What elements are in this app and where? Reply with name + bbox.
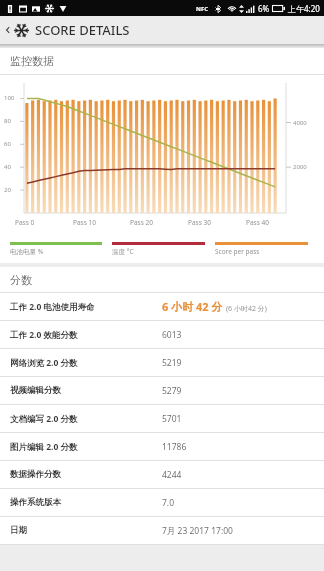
staticText: 60	[4, 140, 11, 148]
staticText: Pass 10	[73, 218, 96, 227]
staticText: Pass 40	[246, 218, 269, 227]
staticText: 分数	[10, 273, 32, 287]
staticText: 视频编辑分数	[10, 385, 61, 396]
staticText: 6013	[162, 329, 182, 341]
staticText: 工作 2.0 电池使用寿命	[10, 301, 95, 313]
staticText: Pass 30	[188, 218, 211, 227]
button[interactable]: 工作 2.0 效能分数	[0, 321, 324, 349]
staticText: SCORE DETAILS	[35, 21, 130, 39]
staticText: 11786	[162, 441, 187, 453]
button[interactable]: 视频编辑分数	[0, 377, 324, 405]
staticText: 4244	[162, 469, 182, 481]
staticText: (6 小时42 分)	[226, 304, 267, 314]
staticText: 图片编辑 2.0 分数	[10, 441, 78, 453]
staticText: Pass 0	[15, 218, 35, 227]
staticText: NFC	[196, 5, 209, 13]
button[interactable]: Back	[2, 24, 14, 36]
staticText: 6 小时 42 分	[162, 299, 223, 314]
staticText: 文档编写 2.0 分数	[10, 413, 78, 425]
button[interactable]: Back	[0, 16, 324, 44]
staticText: 5701	[162, 413, 182, 425]
staticText: 5219	[162, 357, 182, 369]
button[interactable]: 网络浏览 2.0 分数	[0, 349, 324, 377]
staticText: 2000	[293, 163, 307, 171]
staticText: 4000	[293, 119, 307, 127]
button[interactable]: 日期	[0, 517, 324, 545]
staticText: Score per pass	[215, 247, 260, 256]
button[interactable]: 数据操作分数	[0, 461, 324, 489]
staticText: 7.0	[162, 497, 175, 509]
staticText: 数据操作分数	[10, 469, 61, 480]
button[interactable]: 图片编辑 2.0 分数	[0, 433, 324, 461]
staticText: 80	[4, 117, 11, 125]
staticText: 7月 23 2017 17:00	[162, 525, 233, 537]
staticText: 上午4:20	[288, 3, 320, 14]
staticText: 温度 °C	[112, 247, 134, 256]
staticText: 网络浏览 2.0 分数	[10, 357, 78, 369]
button[interactable]: 文档编写 2.0 分数	[0, 405, 324, 433]
staticText: 工作 2.0 效能分数	[10, 329, 78, 341]
staticText: 5279	[162, 385, 182, 397]
staticText: 20	[4, 186, 11, 194]
button[interactable]: 操作系统版本	[0, 489, 324, 517]
staticText: 电池电量 %	[10, 247, 44, 256]
staticText: 操作系统版本	[10, 497, 61, 508]
staticText: 6%	[258, 3, 270, 14]
staticText: 40	[4, 163, 11, 171]
staticText: 监控数据	[10, 54, 54, 68]
staticText: 日期	[10, 525, 27, 536]
staticText: 100	[4, 94, 15, 102]
button[interactable]: 工作 2.0 电池使用寿命	[0, 293, 324, 321]
staticText: Pass 20	[130, 218, 153, 227]
